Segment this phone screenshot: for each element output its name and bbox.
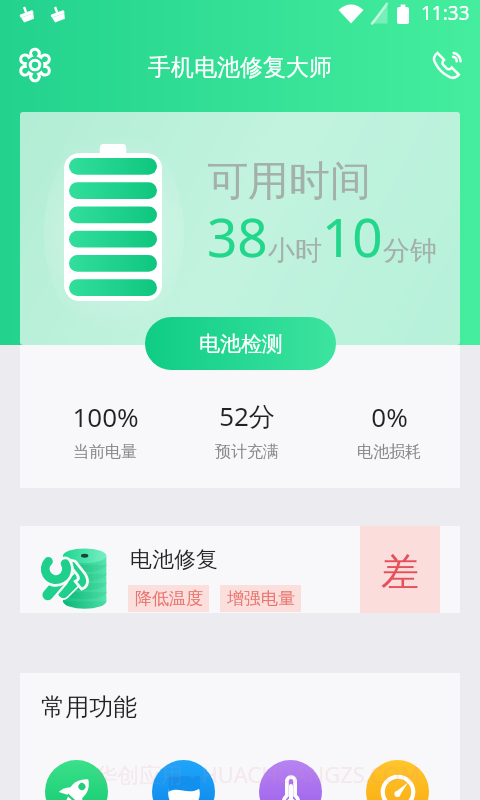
staticText: 常用功能 — [41, 692, 137, 722]
staticText: 100% — [72, 399, 139, 434]
staticText: 增强电量 — [227, 588, 295, 609]
button[interactable]: Clean — [152, 760, 215, 800]
staticText: 手机电池修复大师 — [148, 53, 332, 82]
button[interactable]: Cool — [259, 760, 322, 800]
staticText: 0% — [371, 399, 408, 434]
button[interactable]: 52分 — [176, 398, 318, 462]
button[interactable]: 增强电量 — [220, 585, 301, 612]
staticText: 电池损耗 — [357, 442, 421, 462]
button[interactable]: Settings — [12, 42, 58, 88]
button[interactable]: 电池检测 — [145, 317, 336, 370]
button[interactable]: 降低温度 — [128, 585, 209, 612]
staticText: 分钟 — [383, 234, 437, 268]
staticText: 电池修复 — [130, 546, 218, 574]
button[interactable]: Boost — [45, 760, 108, 800]
button[interactable]: 0% — [318, 399, 460, 462]
staticText: 小时 — [268, 234, 322, 268]
staticText: 降低温度 — [135, 588, 203, 609]
staticText: 10 — [322, 200, 383, 272]
staticText: 预计充满 — [215, 442, 279, 462]
button[interactable]: Call — [422, 42, 468, 88]
button[interactable]: Speed — [366, 760, 429, 800]
staticText: 38 — [207, 200, 268, 272]
staticText: 11:33 — [421, 0, 470, 26]
button[interactable]: 100% — [34, 399, 176, 462]
staticText: 差 — [381, 548, 419, 596]
staticText: 电池检测 — [199, 331, 283, 357]
button[interactable]: 电池修复 — [20, 526, 460, 613]
staticText: 华创应用 - HUACHUANGZS.COM — [95, 759, 421, 789]
staticText: 当前电量 — [73, 442, 137, 462]
staticText: 52分 — [219, 398, 275, 434]
staticText: 可用时间 — [207, 156, 371, 208]
